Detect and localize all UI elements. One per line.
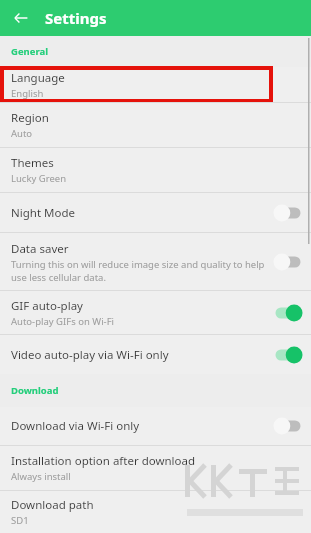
staticText: Lucky Green	[11, 172, 304, 185]
staticText: Download path	[11, 497, 94, 513]
button[interactable]: Region	[0, 103, 311, 147]
staticText: Turning this on will reduce image size a…	[11, 258, 269, 283]
staticText: Data saver	[11, 241, 69, 257]
button[interactable]: Themes	[0, 148, 311, 192]
staticText: Language	[11, 70, 65, 86]
button[interactable]: On	[272, 303, 304, 323]
staticText: General	[11, 45, 48, 58]
staticText: Always install	[11, 470, 304, 483]
staticText: SD1	[11, 514, 304, 527]
staticText: Themes	[11, 155, 54, 171]
staticText: Video auto-play via Wi-Fi only	[11, 347, 169, 363]
button[interactable]: Data saver	[0, 233, 311, 290]
button[interactable]: Off	[272, 416, 304, 436]
staticText: Auto-play GIFs on Wi-Fi	[11, 315, 269, 328]
button[interactable]: On	[272, 345, 304, 365]
button[interactable]: GIF auto-play	[0, 291, 311, 334]
staticText: Settings	[45, 8, 107, 28]
staticText: English	[11, 87, 44, 100]
button[interactable]: Night Mode	[0, 193, 311, 232]
button[interactable]: Off	[272, 252, 304, 272]
button[interactable]: Installation option after download	[0, 446, 311, 490]
staticText: Installation option after download	[11, 453, 196, 469]
button[interactable]: Language	[0, 67, 311, 102]
staticText: Download	[11, 384, 59, 397]
staticText: Download via Wi-Fi only	[11, 418, 140, 434]
button[interactable]: Download path	[0, 491, 311, 533]
staticText: Region	[11, 110, 49, 126]
button[interactable]: Video auto-play via Wi-Fi only	[0, 335, 311, 374]
staticText: GIF auto-play	[11, 298, 83, 314]
button[interactable]: Back	[8, 5, 34, 31]
staticText: Night Mode	[11, 205, 75, 221]
button[interactable]: Download via Wi-Fi only	[0, 407, 311, 445]
button[interactable]: Off	[272, 203, 304, 223]
staticText: Auto	[11, 127, 304, 140]
